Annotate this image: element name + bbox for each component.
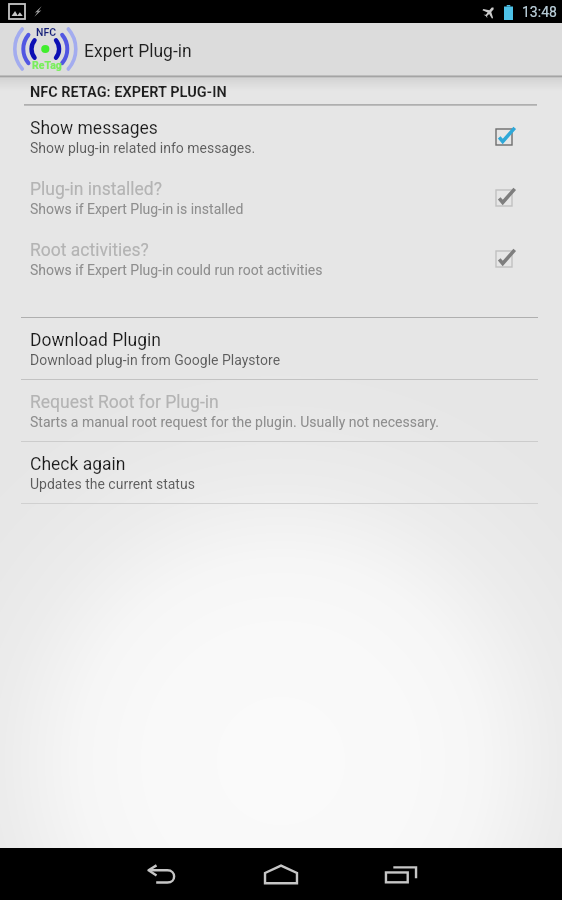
staticText: Show plug-in related info messages. bbox=[30, 140, 256, 156]
staticText: Plug-in installed? bbox=[30, 179, 162, 200]
staticText: 13:48 bbox=[522, 4, 557, 20]
staticText: Starts a manual root request for the plu… bbox=[30, 414, 439, 430]
button[interactable]: Show messages bbox=[0, 106, 562, 167]
button[interactable]: Request Root for Plug-in bbox=[0, 380, 562, 441]
staticText: Shows if Expert Plug-in could run root a… bbox=[30, 262, 323, 278]
staticText: Download Plugin bbox=[30, 330, 161, 351]
staticText: NFC bbox=[36, 26, 57, 38]
staticText: Root activities? bbox=[30, 240, 149, 261]
staticText: Show messages bbox=[30, 118, 158, 139]
button[interactable]: Download Plugin bbox=[0, 318, 562, 379]
staticText: Request Root for Plug-in bbox=[30, 392, 219, 413]
staticText: ReTag bbox=[32, 59, 62, 71]
button[interactable]: Back bbox=[101, 848, 221, 900]
staticText: Check again bbox=[30, 454, 126, 475]
button[interactable]: Check again bbox=[0, 442, 562, 503]
button[interactable]: Recent apps bbox=[341, 848, 461, 900]
button[interactable]: Plug-in installed? bbox=[0, 167, 562, 228]
staticText: Shows if Expert Plug-in is installed bbox=[30, 201, 244, 217]
staticText: Expert Plug-in bbox=[84, 41, 192, 62]
staticText: Download plug-in from Google Playstore bbox=[30, 352, 281, 368]
button[interactable]: Root activities? bbox=[0, 228, 562, 289]
staticText: Updates the current status bbox=[30, 476, 195, 492]
button[interactable]: Home bbox=[221, 848, 341, 900]
staticText: NFC RETAG: EXPERT PLUG-IN bbox=[30, 84, 227, 101]
